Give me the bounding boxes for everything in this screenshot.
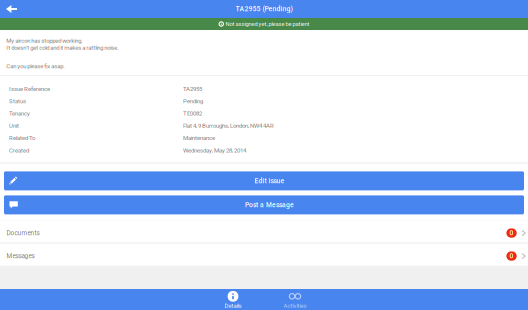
staticText: Wednesday, May 28, 2014 (183, 147, 246, 154)
staticText: Tenancy (9, 110, 30, 117)
staticText: Not assigned yet, please be patient (225, 21, 309, 27)
staticText: TA2955 (Pending) (235, 5, 292, 13)
staticText: Unit (9, 122, 19, 129)
button[interactable]: Activities (264, 289, 326, 310)
staticText: It doesn't get cold and it makes a rattl… (6, 44, 119, 51)
button[interactable]: Documents (0, 220, 528, 243)
staticText: Flat 4, 9 Burroughs, London, NW4 4AR (183, 122, 274, 129)
staticText: Created (9, 147, 29, 154)
staticText: Edit Issue (254, 177, 284, 185)
staticText: Messages (6, 252, 34, 260)
button[interactable]: Edit Issue (4, 171, 524, 190)
staticText: 0 (510, 252, 514, 260)
staticText: Can you please fix asap. (6, 63, 65, 70)
staticText: Details (224, 302, 241, 309)
staticText: 0 (510, 229, 514, 237)
staticText: Pending (183, 98, 203, 105)
button[interactable]: Messages (0, 243, 528, 266)
button[interactable]: Back (3, 0, 20, 18)
staticText: Status (9, 98, 26, 105)
button[interactable]: Post a Message (4, 195, 524, 214)
staticText: Maintenance (183, 134, 215, 141)
staticText: Documents (6, 229, 39, 237)
staticText: Issue Reference (9, 85, 50, 92)
staticText: TA2955 (183, 85, 202, 92)
staticText: Related To (9, 134, 35, 141)
staticText: TE0082 (183, 110, 202, 117)
staticText: My aircon has stopped working. (6, 37, 83, 44)
staticText: Activities (283, 302, 306, 309)
button[interactable]: Details (202, 289, 264, 310)
staticText: Post a Message (245, 201, 294, 209)
